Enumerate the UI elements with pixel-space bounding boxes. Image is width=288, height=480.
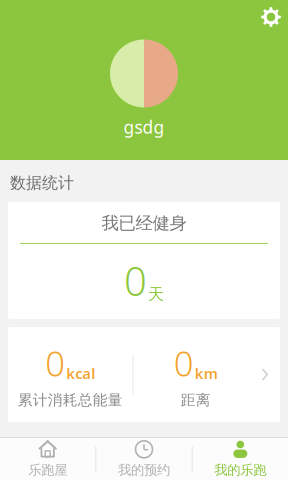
button[interactable]: 0 — [8, 327, 280, 422]
staticText: 数据统计 — [10, 173, 74, 193]
staticText: 距离 — [181, 391, 211, 409]
staticText: 0 — [124, 254, 147, 307]
staticText: km — [195, 364, 218, 383]
button[interactable]: 我的预约 — [96, 434, 192, 480]
staticText: 天 — [148, 284, 164, 304]
staticText: 我已经健身 — [101, 213, 186, 234]
button[interactable]: Settings — [254, 0, 288, 34]
staticText: 0 — [174, 340, 194, 386]
staticText: gsdg — [123, 115, 164, 138]
staticText: 0 — [45, 340, 65, 386]
staticText: 我的乐跑 — [214, 462, 266, 478]
button[interactable]: 乐跑屋 — [0, 434, 95, 480]
staticText: 乐跑屋 — [28, 462, 67, 478]
staticText: kcal — [66, 364, 95, 383]
button[interactable]: Profile photo — [110, 39, 178, 107]
button[interactable]: 我的乐跑 — [193, 434, 288, 480]
staticText: 累计消耗总能量 — [18, 391, 123, 409]
staticText: 我的预约 — [118, 462, 170, 478]
